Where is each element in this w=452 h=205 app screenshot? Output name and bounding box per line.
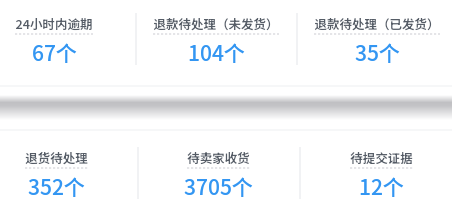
staticText: 3705个: [184, 171, 253, 201]
staticText: 352个: [28, 171, 85, 201]
staticText: 待提交证据: [350, 148, 413, 166]
button[interactable]: 待提交证据: [300, 148, 452, 201]
staticText: 12个: [359, 171, 404, 201]
staticText: 退货待处理: [25, 148, 88, 166]
button[interactable]: 退款待处理（未发货）: [135, 14, 297, 67]
staticText: 退款待处理（已发货）: [314, 14, 440, 32]
button[interactable]: 退货待处理: [0, 148, 137, 201]
staticText: 待卖家收货: [187, 148, 250, 166]
staticText: 104个: [188, 37, 245, 67]
staticText: 24小时内逾期: [15, 14, 93, 32]
button[interactable]: 退款待处理（已发货）: [296, 14, 452, 67]
button[interactable]: 待卖家收货: [137, 148, 299, 201]
staticText: 退款待处理（未发货）: [153, 14, 279, 32]
button[interactable]: 24小时内逾期: [0, 14, 135, 67]
staticText: 67个: [32, 37, 77, 67]
staticText: 35个: [355, 37, 400, 67]
